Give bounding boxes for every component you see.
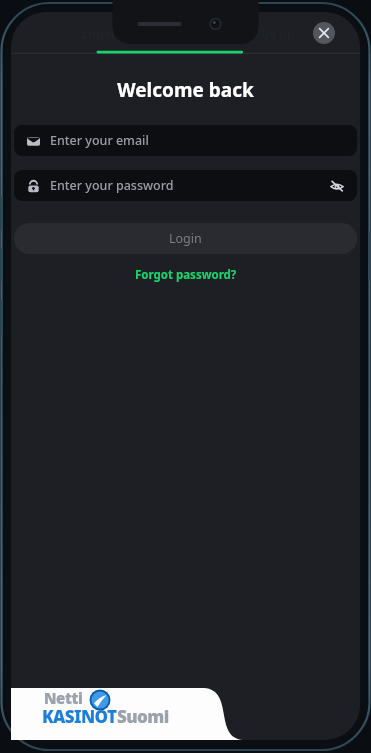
button[interactable]: Enter your password — [14, 170, 357, 201]
button[interactable]: Show password — [328, 177, 345, 194]
staticText: Enter your password — [50, 177, 174, 194]
staticText: Welcome back — [11, 77, 360, 103]
button[interactable]: Close — [313, 22, 335, 44]
button[interactable]: Login — [11, 12, 185, 54]
staticText: Enter your email — [50, 132, 149, 149]
staticText: Sign up — [251, 25, 295, 41]
staticText: Suomi — [117, 705, 169, 728]
staticText: Netti — [44, 688, 83, 708]
button[interactable]: Forgot password? — [11, 265, 360, 285]
staticText: Forgot password? — [135, 267, 237, 283]
staticText: Login — [82, 25, 115, 41]
staticText: Login — [169, 230, 202, 247]
staticText: KASINOT — [42, 705, 117, 728]
button[interactable]: Enter your email — [14, 125, 357, 156]
button[interactable]: Login — [14, 223, 357, 254]
button[interactable]: Sign up — [185, 12, 360, 54]
